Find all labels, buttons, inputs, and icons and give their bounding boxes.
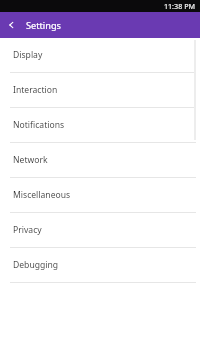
button[interactable]: Privacy <box>0 213 200 247</box>
staticText: Interaction <box>13 84 58 96</box>
staticText: Display <box>13 49 43 61</box>
button[interactable]: Debugging <box>0 248 200 282</box>
staticText: Miscellaneous <box>13 189 71 201</box>
staticText: Privacy <box>13 224 42 236</box>
button[interactable]: Notifications <box>0 108 200 142</box>
staticText: Debugging <box>13 259 59 271</box>
staticText: 11:38 PM <box>163 1 195 11</box>
staticText: Settings <box>26 19 61 32</box>
button[interactable]: Display <box>0 38 200 72</box>
button[interactable]: Back <box>0 13 24 37</box>
staticText: Network <box>13 154 48 166</box>
staticText: Notifications <box>13 119 65 131</box>
button[interactable]: Network <box>0 143 200 177</box>
button[interactable]: Interaction <box>0 73 200 107</box>
button[interactable]: Miscellaneous <box>0 178 200 212</box>
